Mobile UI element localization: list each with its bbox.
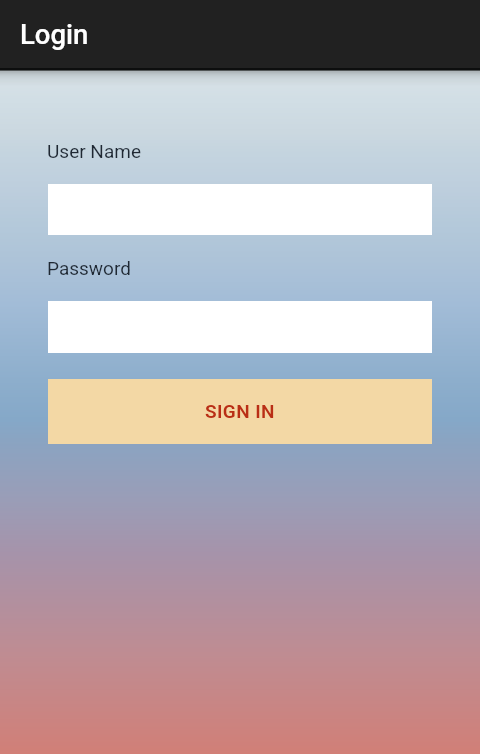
staticText: User Name: [47, 140, 141, 162]
staticText: SIGN IN: [205, 400, 275, 422]
button[interactable]: SIGN IN: [48, 379, 432, 444]
staticText: Password: [47, 257, 131, 279]
staticText: Login: [20, 18, 89, 50]
